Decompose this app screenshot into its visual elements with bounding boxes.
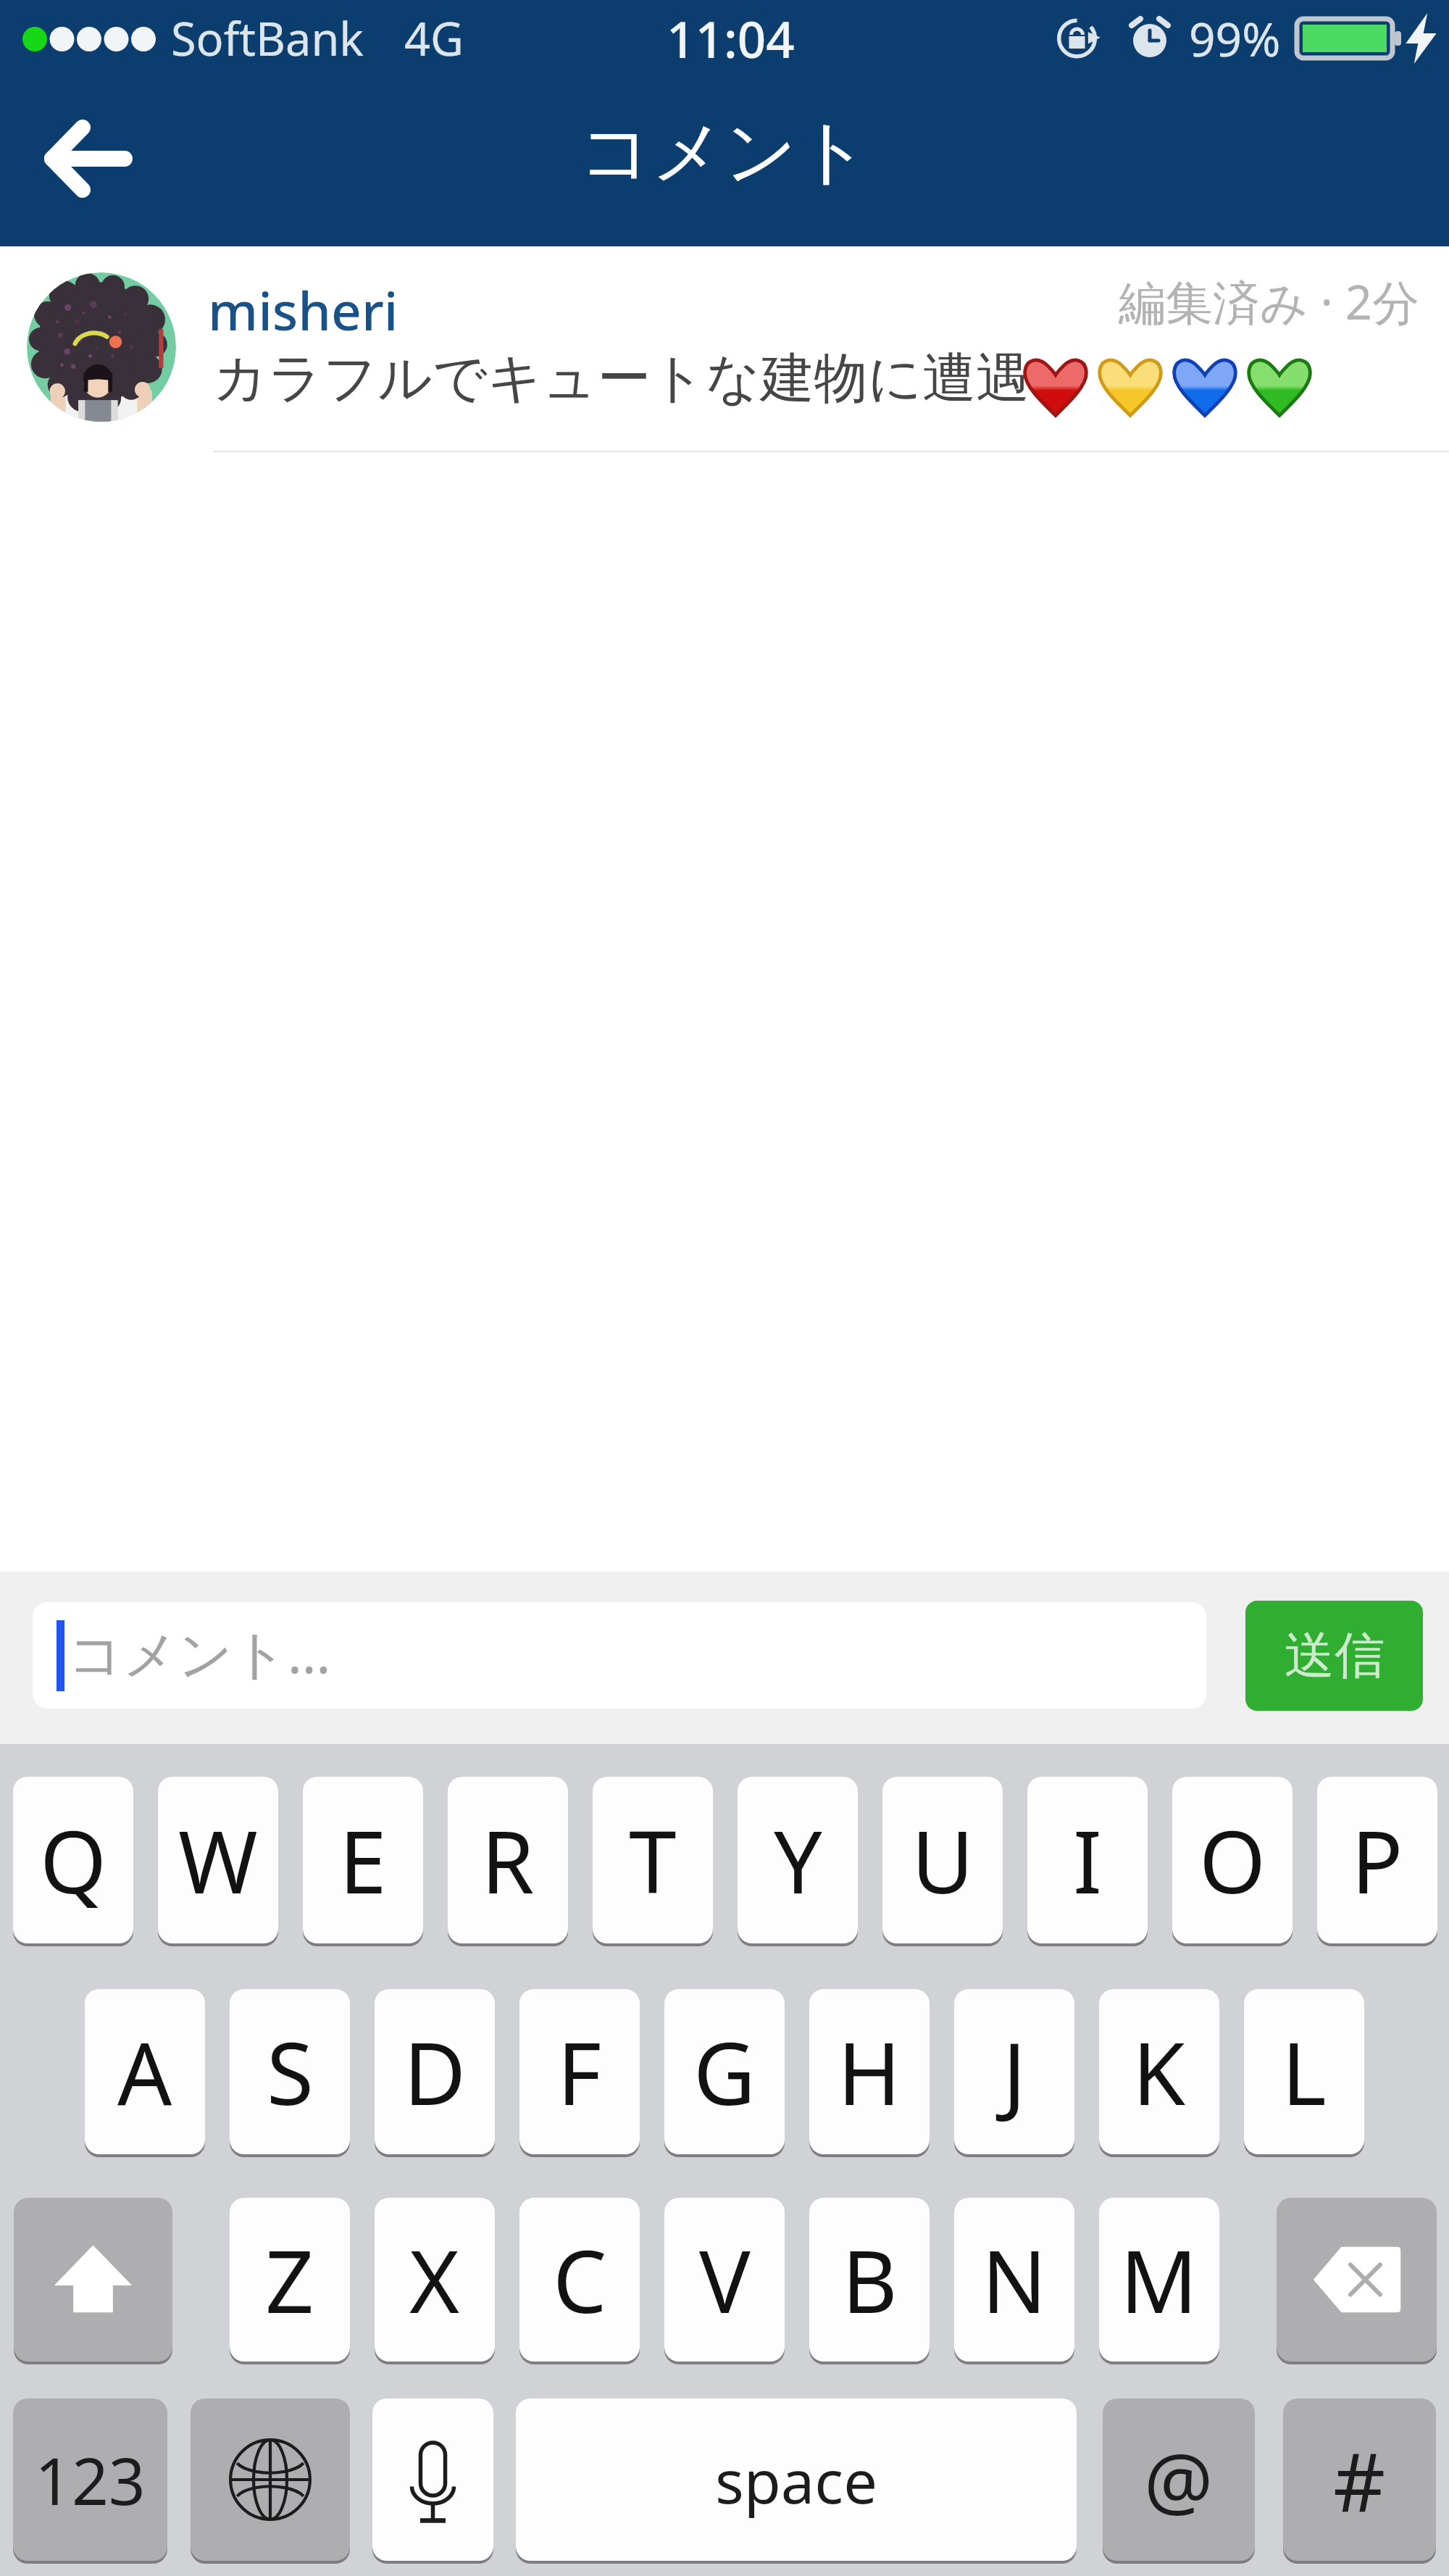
- button[interactable]: L: [1244, 1989, 1364, 2154]
- button[interactable]: H: [809, 1989, 930, 2154]
- button[interactable]: G: [664, 1989, 785, 2154]
- staticText: Z: [265, 2222, 314, 2338]
- button[interactable]: N: [954, 2198, 1074, 2362]
- staticText: 11:04: [667, 4, 795, 72]
- button[interactable]: @: [1103, 2398, 1255, 2561]
- staticText: J: [1003, 2014, 1027, 2130]
- staticText: 99%: [1189, 7, 1281, 70]
- staticText: 編集済み · 2分: [724, 270, 1419, 334]
- staticText: X: [409, 2222, 460, 2338]
- button[interactable]: Dictation: [372, 2398, 493, 2561]
- button[interactable]: A: [85, 1989, 205, 2154]
- button[interactable]: T: [593, 1777, 713, 1943]
- staticText: E: [339, 1802, 387, 1919]
- button[interactable]: R: [448, 1777, 568, 1943]
- staticText: @: [1144, 2427, 1214, 2532]
- button[interactable]: F: [519, 1989, 640, 2154]
- staticText: I: [1073, 1802, 1103, 1919]
- button[interactable]: misheri avatar: [27, 272, 176, 422]
- staticText: SoftBank: [171, 7, 364, 70]
- staticText: C: [553, 2222, 607, 2338]
- button[interactable]: Z: [230, 2198, 350, 2362]
- button[interactable]: Shift: [14, 2198, 172, 2362]
- button[interactable]: misheri: [208, 274, 398, 346]
- staticText: M: [1120, 2222, 1198, 2338]
- staticText: G: [693, 2014, 756, 2130]
- button[interactable]: V: [664, 2198, 785, 2362]
- staticText: 送信: [1285, 1625, 1385, 1688]
- button[interactable]: U: [882, 1777, 1003, 1943]
- staticText: A: [117, 2014, 172, 2130]
- staticText: K: [1132, 2014, 1186, 2130]
- staticText: N: [982, 2222, 1047, 2338]
- staticText: カラフルでキュートな建物に遭遇: [213, 345, 1030, 412]
- button[interactable]: Q: [13, 1777, 133, 1943]
- button[interactable]: J: [954, 1989, 1074, 2154]
- staticText: コメント: [0, 108, 1449, 197]
- staticText: H: [838, 2014, 901, 2130]
- staticText: Y: [774, 1802, 822, 1919]
- staticText: W: [178, 1802, 258, 1919]
- staticText: #: [1333, 2425, 1386, 2535]
- button[interactable]: B: [809, 2198, 930, 2362]
- button[interactable]: O: [1172, 1777, 1293, 1943]
- button[interactable]: Back: [22, 103, 155, 216]
- staticText: T: [629, 1802, 677, 1919]
- staticText: コメント...: [68, 1616, 331, 1689]
- staticText: L: [1282, 2014, 1327, 2130]
- button[interactable]: コメント...: [33, 1602, 1206, 1709]
- button[interactable]: 送信: [1245, 1601, 1423, 1711]
- button[interactable]: 123: [13, 2398, 167, 2561]
- button[interactable]: Y: [738, 1777, 858, 1943]
- button[interactable]: E: [303, 1777, 423, 1943]
- button[interactable]: M: [1099, 2198, 1219, 2362]
- button[interactable]: I: [1027, 1777, 1148, 1943]
- staticText: Q: [40, 1802, 107, 1919]
- staticText: P: [1351, 1802, 1403, 1919]
- staticText: F: [557, 2014, 602, 2130]
- staticText: S: [267, 2014, 314, 2130]
- button[interactable]: W: [158, 1777, 278, 1943]
- staticText: O: [1199, 1802, 1266, 1919]
- staticText: 4G: [404, 7, 464, 70]
- staticText: 123: [35, 2436, 146, 2524]
- staticText: R: [481, 1802, 535, 1919]
- button[interactable]: #: [1283, 2398, 1436, 2561]
- button[interactable]: P: [1317, 1777, 1437, 1943]
- staticText: V: [699, 2222, 751, 2338]
- button[interactable]: space: [516, 2398, 1077, 2561]
- button[interactable]: S: [230, 1989, 350, 2154]
- button[interactable]: K: [1099, 1989, 1219, 2154]
- button[interactable]: C: [519, 2198, 640, 2362]
- staticText: D: [404, 2014, 467, 2130]
- button[interactable]: Backspace: [1277, 2198, 1437, 2362]
- button[interactable]: Keyboard language: [191, 2398, 350, 2561]
- button[interactable]: X: [375, 2198, 495, 2362]
- staticText: space: [715, 2439, 878, 2521]
- staticText: B: [842, 2222, 898, 2338]
- staticText: U: [911, 1802, 974, 1919]
- button[interactable]: D: [375, 1989, 495, 2154]
